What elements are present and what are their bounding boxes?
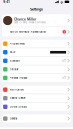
- staticText: Notifications: [9, 88, 23, 91]
- button[interactable]: General: [2, 114, 71, 123]
- button[interactable]: Cellular: [2, 65, 71, 73]
- staticText: 9:41: [3, 0, 9, 4]
- staticText: Airplane Mode: [9, 42, 24, 45]
- button[interactable]: Bluetooth: [2, 57, 71, 65]
- button[interactable]: Do Not Disturb: [2, 103, 71, 111]
- staticText: Do Not Disturb: [9, 105, 26, 108]
- button[interactable]: Airplane Mode: [2, 40, 71, 48]
- staticText: Off: [62, 76, 66, 79]
- button[interactable]: Control Center: [2, 94, 71, 102]
- button[interactable]: Notifications: [2, 86, 71, 94]
- staticText: Apple ID, iCloud, Media & Purchases: [14, 21, 46, 24]
- staticText: Personal Hotspot: [9, 76, 27, 79]
- staticText: Off: [62, 59, 66, 62]
- staticText: Turn On Two-Factor Authentication: [9, 30, 45, 33]
- button[interactable]: Chance Miller: [2, 14, 71, 27]
- button[interactable]: Turn On Two-Factor Authentication: [2, 27, 71, 37]
- staticText: General: [9, 117, 17, 120]
- staticText: Settings: [30, 7, 43, 11]
- staticText: Wi-Fi: [9, 51, 15, 54]
- staticText: Chance Miller: [14, 17, 36, 21]
- button[interactable]: Wi-Fi: [2, 48, 71, 56]
- staticText: Bluetooth: [9, 59, 19, 62]
- staticText: Cellular: [9, 68, 18, 71]
- button[interactable]: Personal Hotspot: [2, 74, 71, 82]
- staticText: Control Center: [9, 97, 25, 100]
